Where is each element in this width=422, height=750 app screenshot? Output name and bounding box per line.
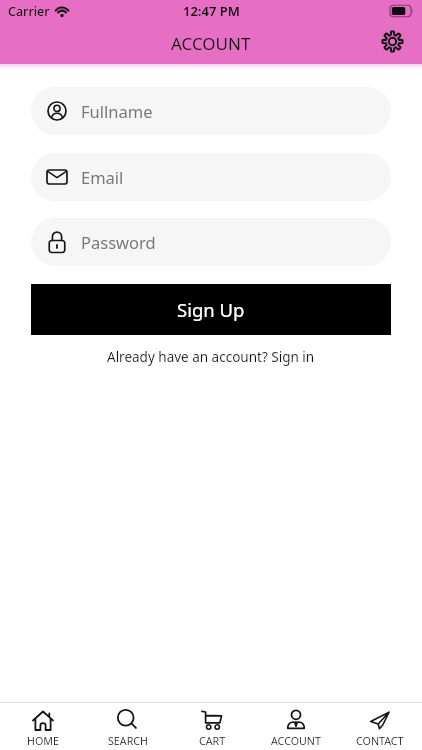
button[interactable]: Sign Up xyxy=(31,284,391,335)
staticText: HOME xyxy=(27,734,59,749)
button[interactable]: CART xyxy=(170,703,254,750)
staticText: Sign Up xyxy=(177,297,245,322)
button[interactable] xyxy=(377,26,407,56)
staticText: CONTACT xyxy=(356,734,404,749)
button[interactable]: Password xyxy=(31,218,391,266)
staticText: Already have an account? Sign in xyxy=(107,348,315,366)
button[interactable]: Email xyxy=(31,153,391,201)
button[interactable]: CONTACT xyxy=(338,703,422,750)
staticText: SEARCH xyxy=(108,734,148,749)
staticText: ACCOUNT xyxy=(171,32,251,55)
button[interactable]: HOME xyxy=(0,703,85,750)
staticText: ACCOUNT xyxy=(271,734,321,749)
staticText: Email xyxy=(81,166,124,188)
button[interactable]: ACCOUNT xyxy=(254,703,338,750)
staticText: 12:47 PM xyxy=(183,2,240,20)
staticText: Carrier xyxy=(8,3,50,20)
button[interactable]: Fullname xyxy=(31,87,391,135)
staticText: CART xyxy=(199,734,226,749)
staticText: Fullname xyxy=(81,100,153,122)
button[interactable]: Already have an account? Sign in xyxy=(107,348,315,366)
button[interactable]: SEARCH xyxy=(85,703,170,750)
staticText: Password xyxy=(81,231,156,253)
